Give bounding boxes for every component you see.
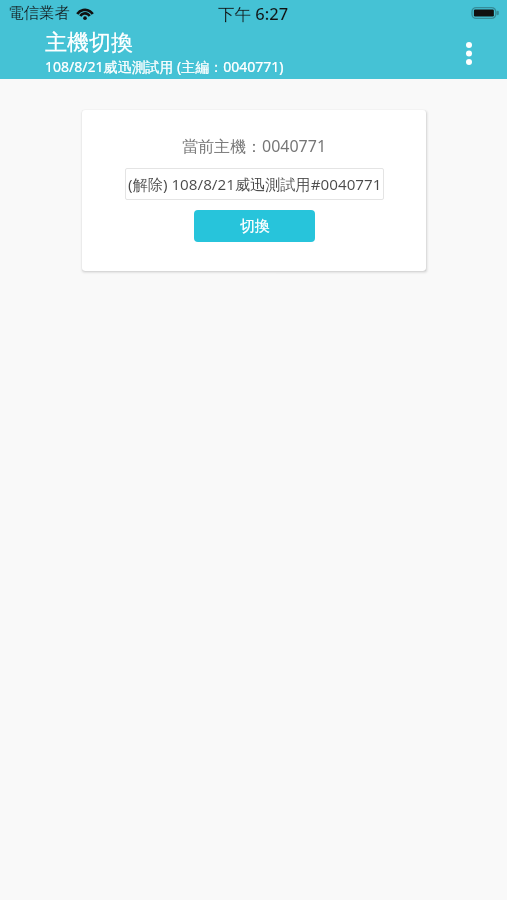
button[interactable]: More options <box>445 29 493 77</box>
staticText: 主機切換 <box>45 29 133 57</box>
staticText: 電信業者 <box>8 3 70 23</box>
staticText: 切換 <box>240 217 270 236</box>
staticText: (解除) 108/8/21威迅測試用#0040771 <box>128 174 382 195</box>
staticText: 108/8/21威迅測試用 (主編：0040771) <box>45 57 284 76</box>
staticText: 下午 6:27 <box>218 2 289 25</box>
button[interactable]: (解除) 108/8/21威迅測試用#0040771 <box>125 168 384 200</box>
staticText: 當前主機：0040771 <box>182 135 327 157</box>
button[interactable]: 切換 <box>194 210 315 242</box>
